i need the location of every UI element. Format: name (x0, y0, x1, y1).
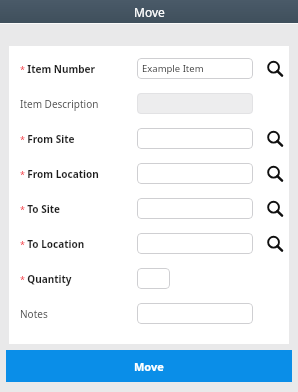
button[interactable]: * From Site (9, 121, 289, 156)
button[interactable]: * From Location (9, 156, 289, 191)
button[interactable]: Item Description (9, 86, 289, 121)
staticText: Move (134, 359, 164, 374)
button[interactable]: Move (6, 350, 292, 382)
button[interactable] (137, 233, 253, 254)
button[interactable]: Search From Location (263, 162, 287, 186)
button[interactable] (137, 128, 253, 149)
button[interactable]: Notes (9, 296, 289, 331)
button[interactable] (137, 163, 253, 184)
staticText: * From Location (20, 167, 99, 181)
button[interactable] (137, 268, 170, 289)
button[interactable]: * Item Number (9, 51, 289, 86)
button[interactable] (137, 303, 253, 324)
button[interactable] (137, 198, 253, 219)
staticText: * Item Number (20, 62, 95, 76)
button[interactable]: * To Site (9, 191, 289, 226)
staticText: Item Description (20, 97, 99, 111)
button[interactable]: Search Item Number (263, 57, 287, 81)
staticText: Move (134, 4, 165, 20)
button[interactable]: * Quantity (9, 261, 289, 296)
button[interactable]: Example Item (137, 58, 253, 79)
staticText: * To Location (20, 237, 85, 251)
button[interactable]: * To Location (9, 226, 289, 261)
staticText: * From Site (20, 132, 75, 146)
button[interactable] (137, 93, 253, 114)
staticText: Example Item (142, 62, 204, 75)
button[interactable]: Search To Site (263, 197, 287, 221)
staticText: * Quantity (20, 272, 72, 286)
button[interactable]: Search From Site (263, 127, 287, 151)
staticText: Notes (20, 307, 48, 321)
button[interactable]: Search To Location (263, 232, 287, 256)
staticText: * To Site (20, 202, 61, 216)
